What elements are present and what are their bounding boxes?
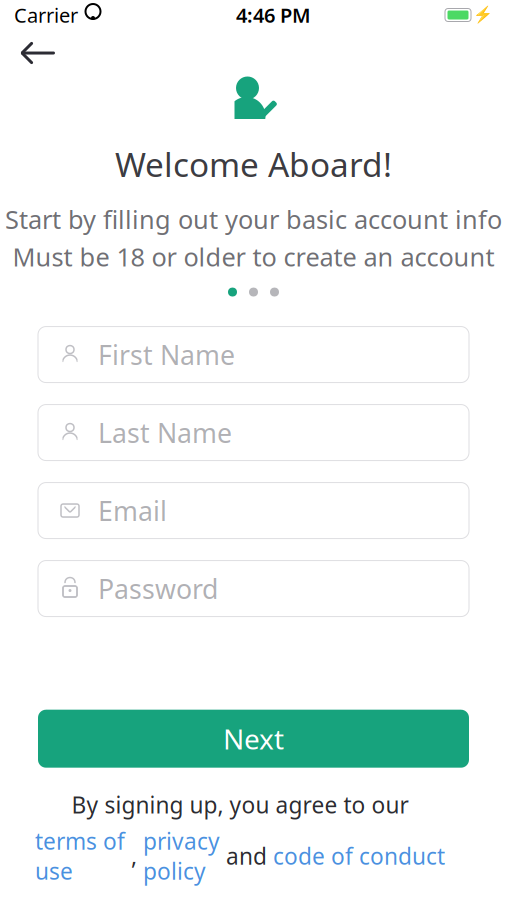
staticText: Welcome Aboard!: [115, 142, 392, 186]
staticText: ,: [125, 841, 143, 871]
button[interactable]: First Name: [38, 326, 469, 382]
button[interactable]: terms of use: [35, 826, 125, 886]
staticText: privacy policy: [143, 826, 220, 886]
button[interactable]: code of conduct: [273, 841, 445, 871]
staticText: ⚡: [473, 6, 493, 24]
staticText: Must be 18 or older to create an account: [12, 240, 494, 273]
button[interactable]: Email: [38, 482, 469, 538]
button[interactable]: Back: [10, 31, 66, 75]
staticText: First Name: [98, 337, 235, 372]
button[interactable]: Password: [38, 560, 469, 616]
staticText: and: [220, 841, 273, 871]
staticText: code of conduct: [273, 841, 445, 871]
button[interactable]: privacy policy: [143, 826, 220, 886]
staticText: Last Name: [98, 415, 232, 450]
staticText: Password: [98, 571, 218, 606]
staticText: By signing up, you agree to our: [71, 790, 408, 820]
button[interactable]: Last Name: [38, 404, 469, 460]
staticText: Start by filling out your basic account …: [5, 202, 502, 236]
staticText: Next: [223, 720, 284, 757]
button[interactable]: Next: [38, 710, 469, 768]
staticText: Carrier: [14, 2, 78, 28]
staticText: Email: [98, 493, 167, 528]
staticText: terms of use: [35, 826, 125, 886]
staticText: 4:46 PM: [236, 2, 311, 28]
